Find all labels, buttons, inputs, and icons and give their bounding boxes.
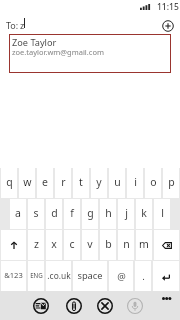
staticText: q — [6, 175, 13, 189]
button[interactable]: c — [64, 230, 80, 260]
staticText: space — [77, 269, 103, 282]
staticText: p — [168, 175, 175, 189]
button[interactable]: m — [136, 230, 152, 260]
button[interactable]: y — [91, 168, 107, 198]
button[interactable]: n — [118, 230, 134, 260]
button[interactable]: g — [82, 199, 98, 229]
staticText: o — [150, 175, 157, 189]
button[interactable]: d — [46, 199, 62, 229]
staticText: g — [87, 206, 94, 220]
button[interactable]: Attach — [63, 295, 85, 317]
button[interactable]: w — [19, 168, 35, 198]
button[interactable]: r — [55, 168, 71, 198]
button[interactable]: space — [73, 261, 107, 291]
button[interactable]: i — [127, 168, 143, 198]
button[interactable]: o — [145, 168, 161, 198]
staticText: j — [125, 206, 128, 220]
button[interactable]: p — [163, 168, 179, 198]
button[interactable]: a — [10, 199, 26, 229]
button[interactable] — [153, 261, 179, 291]
staticText: y — [96, 175, 102, 189]
button[interactable]: b — [100, 230, 116, 260]
button[interactable]: Voice input — [124, 295, 146, 317]
button[interactable]: l — [154, 199, 170, 229]
button[interactable]: ENG — [28, 261, 44, 291]
staticText: i — [134, 175, 137, 189]
button[interactable]: x — [46, 230, 62, 260]
staticText: h — [105, 206, 112, 220]
staticText: e — [42, 175, 48, 189]
staticText: r — [61, 175, 66, 189]
staticText: v — [87, 237, 93, 251]
button[interactable] — [154, 230, 179, 260]
staticText: d — [51, 206, 58, 220]
staticText: u — [114, 175, 121, 189]
staticText: f — [70, 206, 74, 220]
staticText: m — [139, 237, 149, 251]
staticText: w — [23, 175, 32, 189]
button[interactable]: f — [64, 199, 80, 229]
button[interactable]: @ — [109, 261, 133, 291]
button[interactable]: k — [136, 199, 152, 229]
button[interactable]: Close — [94, 295, 116, 317]
staticText: ENG — [30, 271, 43, 279]
button[interactable]: q — [1, 168, 17, 198]
button[interactable] — [1, 230, 26, 260]
button[interactable]: s — [28, 199, 44, 229]
button[interactable]: t — [73, 168, 89, 198]
staticText: . — [142, 270, 145, 283]
button[interactable]: h — [100, 199, 116, 229]
button[interactable]: More options — [157, 292, 176, 304]
staticText: a — [15, 206, 21, 220]
button[interactable]: Add recipient — [160, 18, 175, 33]
staticText: .co.uk — [47, 270, 71, 281]
staticText: k — [141, 206, 147, 220]
staticText: n — [123, 237, 130, 251]
button[interactable]: &123 — [1, 261, 26, 291]
button[interactable]: . — [135, 261, 151, 291]
staticText: &123 — [4, 270, 23, 280]
button[interactable]: Zoe Taylor — [9, 34, 171, 73]
button[interactable]: j — [118, 199, 134, 229]
staticText: 11:15 — [157, 1, 179, 13]
button[interactable]: e — [37, 168, 53, 198]
staticText: b — [105, 237, 112, 251]
staticText: @ — [117, 270, 126, 283]
staticText: t — [79, 175, 83, 189]
staticText: zoe.taylor.wm@gmail.com — [12, 47, 104, 57]
staticText: x — [51, 237, 57, 251]
staticText: z — [20, 19, 25, 31]
button[interactable]: z — [28, 230, 44, 260]
staticText: s — [33, 206, 39, 220]
staticText: Zoe Taylor — [12, 36, 57, 49]
staticText: c — [69, 237, 75, 251]
staticText: l — [161, 206, 164, 220]
button[interactable]: v — [82, 230, 98, 260]
button[interactable]: Send — [30, 295, 52, 317]
staticText: To: — [6, 19, 19, 31]
staticText: z — [34, 237, 39, 251]
button[interactable]: u — [109, 168, 125, 198]
button[interactable]: .co.uk — [46, 261, 71, 291]
